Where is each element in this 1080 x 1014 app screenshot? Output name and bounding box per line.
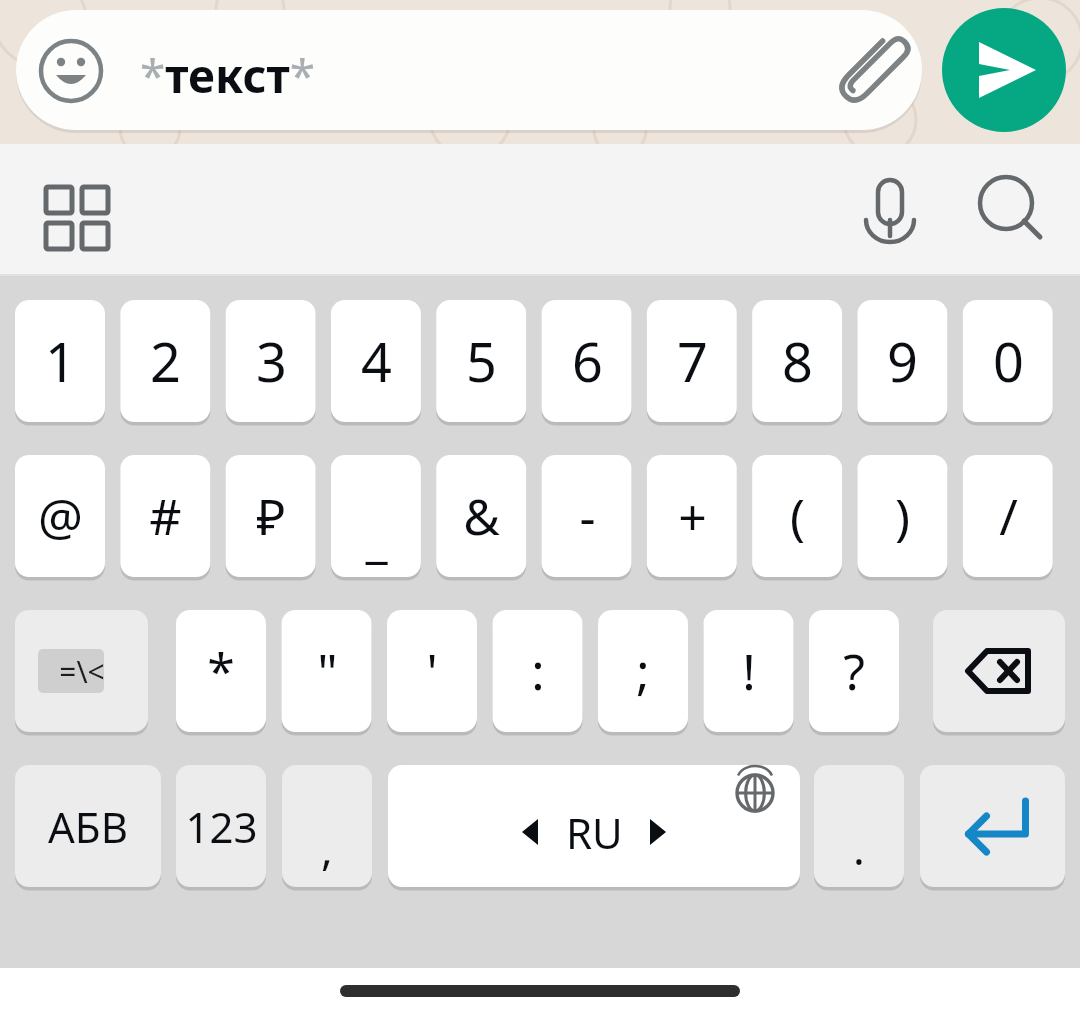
button[interactable]: 7 (647, 300, 737, 422)
button[interactable]: ' (387, 610, 477, 732)
button[interactable]: 3 (226, 300, 316, 422)
staticText: 9 (887, 324, 918, 398)
staticText: ( (790, 482, 805, 550)
staticText: _ (365, 504, 388, 572)
button[interactable]: 0 (963, 300, 1053, 422)
staticText: @ (38, 482, 83, 550)
staticText: # (149, 482, 182, 550)
button[interactable]: Keyboard layouts (36, 178, 108, 250)
staticText: + (678, 482, 707, 550)
staticText: ? (843, 637, 865, 705)
button[interactable]: 5 (436, 300, 526, 422)
staticText: RU (566, 804, 623, 861)
staticText: 1 (45, 324, 76, 398)
button[interactable]: Symbols (15, 610, 148, 732)
button[interactable]: Search (968, 172, 1044, 252)
staticText: 2 (150, 324, 181, 398)
staticText: 8 (782, 324, 813, 398)
button[interactable]: Enter (920, 765, 1065, 887)
button[interactable]: 8 (752, 300, 842, 422)
staticText: : (531, 637, 545, 705)
button[interactable]: ₽ (226, 455, 316, 577)
staticText: 6 (572, 324, 603, 398)
button[interactable]: / (963, 455, 1053, 577)
button[interactable]: # (120, 455, 210, 577)
staticText: - (579, 482, 596, 550)
button[interactable]: Voice input (852, 172, 928, 252)
button[interactable]: ) (857, 455, 947, 577)
button[interactable]: Space, switch language (388, 765, 800, 887)
button[interactable]: : (493, 610, 583, 732)
staticText: *текст* (140, 44, 316, 104)
staticText: ) (895, 482, 910, 550)
staticText: =\< (59, 651, 105, 692)
button[interactable]: 1 (15, 300, 105, 422)
button[interactable]: ! (704, 610, 794, 732)
button[interactable]: - (542, 455, 632, 577)
staticText: " (317, 637, 338, 705)
button[interactable]: 4 (331, 300, 421, 422)
button[interactable]: _ (331, 455, 421, 577)
staticText: 5 (466, 324, 497, 398)
button[interactable]: " (282, 610, 372, 732)
button[interactable]: 2 (120, 300, 210, 422)
staticText: / (999, 482, 1018, 550)
staticText: ' (426, 637, 438, 705)
button[interactable]: ? (809, 610, 899, 732)
button[interactable]: * (176, 610, 266, 732)
staticText: АБВ (48, 798, 128, 855)
button[interactable]: Period (814, 765, 904, 887)
staticText: 123 (185, 798, 258, 855)
staticText: ₽ (256, 482, 286, 550)
staticText: . (853, 818, 865, 878)
staticText: ! (742, 637, 756, 705)
button[interactable]: 123 (176, 765, 266, 887)
button[interactable]: + (647, 455, 737, 577)
button[interactable]: АБВ (15, 765, 161, 887)
button[interactable]: & (436, 455, 526, 577)
button[interactable]: Backspace (933, 610, 1065, 732)
button[interactable]: ; (598, 610, 688, 732)
staticText: 0 (993, 324, 1024, 398)
staticText: , (321, 818, 333, 878)
button[interactable]: @ (15, 455, 105, 577)
staticText: * (207, 637, 235, 705)
staticText: & (463, 482, 500, 550)
button[interactable]: 9 (857, 300, 947, 422)
staticText: ; (636, 637, 650, 705)
button[interactable]: 6 (542, 300, 632, 422)
button[interactable]: ( (752, 455, 842, 577)
staticText: 7 (677, 324, 708, 398)
staticText: 3 (256, 324, 287, 398)
button[interactable]: Message input (16, 10, 922, 130)
button[interactable]: Send (942, 8, 1066, 132)
staticText: 4 (361, 324, 392, 398)
button[interactable]: Comma (282, 765, 372, 887)
